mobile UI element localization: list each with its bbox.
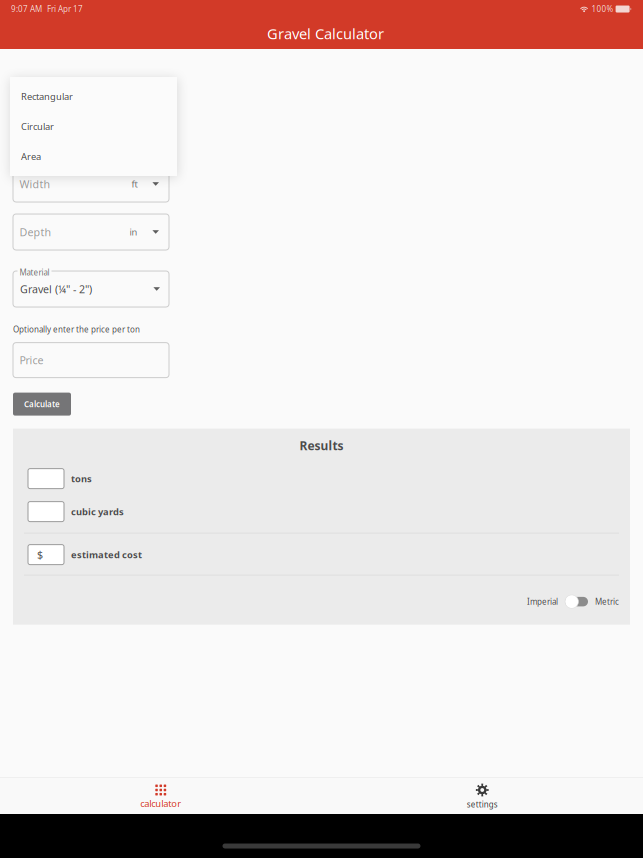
staticText: Results [299, 438, 343, 454]
button[interactable]: Rectangular [10, 81, 177, 111]
button[interactable]: settings [321, 777, 643, 814]
staticText: ft [131, 178, 137, 190]
staticText: Price [19, 353, 43, 367]
staticText: Gravel Calculator [267, 24, 384, 43]
staticText: Circular [21, 120, 54, 133]
staticText: tons [71, 472, 92, 485]
staticText: 9:07 AM [11, 4, 42, 14]
button[interactable]: calculator [0, 777, 321, 814]
staticText: calculator [140, 797, 181, 810]
staticText: 100% [592, 4, 614, 14]
staticText: Rectangular [21, 90, 73, 103]
staticText: $ [37, 547, 43, 562]
staticText: estimated cost [71, 548, 142, 561]
staticText: Metric [595, 596, 619, 607]
staticText: Gravel (¼" - 2") [20, 282, 92, 296]
button[interactable]: Calculate [13, 393, 71, 416]
staticText: Imperial [527, 596, 558, 607]
staticText: Length [19, 129, 56, 143]
staticText: cubic yards [71, 505, 124, 518]
staticText: Material [19, 267, 49, 278]
staticText: Area [21, 150, 41, 163]
button[interactable]: Switch between imperial and metric units [565, 595, 588, 609]
staticText: Fri Apr 17 [47, 4, 83, 14]
staticText: Width [19, 177, 50, 191]
button[interactable]: Circular [10, 111, 177, 141]
staticText: Depth [19, 225, 51, 239]
staticText: Optionally enter the price per ton [13, 324, 140, 335]
staticText: in [129, 226, 137, 238]
staticText: Calculate [24, 399, 60, 409]
button[interactable]: Area [10, 141, 177, 171]
staticText: settings [467, 799, 498, 810]
